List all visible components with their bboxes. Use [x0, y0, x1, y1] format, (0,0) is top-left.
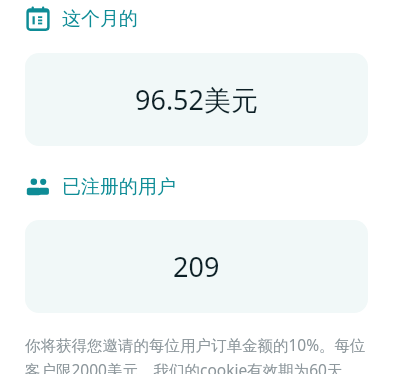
staticText: 这个月的 [62, 7, 138, 31]
other: People [25, 174, 51, 200]
staticText: 你将获得您邀请的每位用户订单金额的10%。每位客户限2000美元。我们的cook… [25, 334, 371, 374]
staticText: 96.52美元 [135, 81, 259, 118]
button[interactable]: People [0, 172, 393, 202]
button[interactable]: Calendar [0, 4, 393, 34]
staticText: 已注册的用户 [62, 175, 176, 199]
staticText: 209 [173, 248, 220, 285]
button[interactable]: 96.52美元 [25, 53, 368, 146]
button[interactable]: 209 [25, 220, 368, 313]
other: Calendar [25, 6, 51, 32]
